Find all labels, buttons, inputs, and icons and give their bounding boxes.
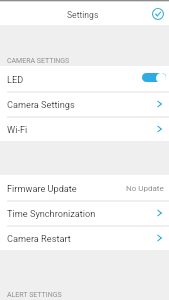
staticText: Camera Restart: [7, 233, 71, 244]
button[interactable]: Time Synchronization: [0, 200, 169, 225]
button[interactable]: Camera Restart: [0, 225, 169, 250]
button[interactable]: Confirm: [150, 6, 166, 22]
staticText: Settings: [67, 10, 99, 20]
button[interactable]: Firmware Update: [0, 175, 169, 200]
button[interactable]: LED: [0, 66, 169, 91]
button[interactable]: LED toggle: [141, 72, 166, 83]
button[interactable]: Wi-Fi: [0, 116, 169, 141]
staticText: ALERT SETTINGS: [7, 291, 62, 299]
staticText: Time Synchronization: [7, 208, 96, 219]
staticText: Firmware Update: [7, 183, 77, 194]
staticText: LED: [7, 74, 24, 85]
staticText: No Update: [126, 184, 164, 193]
button[interactable]: Camera Settings: [0, 91, 169, 116]
staticText: Camera Settings: [7, 99, 75, 110]
staticText: CAMERA SETTINGS: [7, 57, 70, 65]
staticText: Wi-Fi: [7, 124, 28, 135]
